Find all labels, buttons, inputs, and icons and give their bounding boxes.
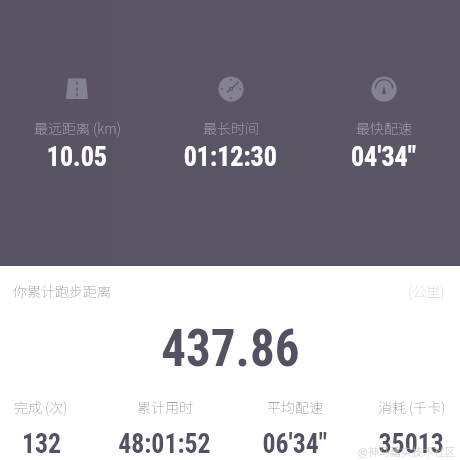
staticText: 06'34" (262, 428, 327, 460)
staticText: 完成 (次) (14, 397, 68, 417)
button[interactable]: Longest time (154, 0, 307, 172)
staticText: 132 (22, 428, 61, 460)
button[interactable]: Longest distance (0, 0, 154, 172)
button[interactable]: 消耗 (千卡) (377, 397, 446, 460)
staticText: 10.05 (47, 140, 107, 172)
staticText: 累计用时 (137, 397, 193, 417)
staticText: 最远距离 (km) (34, 118, 121, 138)
staticText: 最快配速 (356, 118, 412, 138)
staticText: 你累计跑步距离 (13, 281, 111, 301)
staticText: 平均配速 (267, 397, 323, 417)
staticText: (公里) (408, 281, 445, 301)
staticText: 04'34" (351, 140, 416, 172)
staticText: 消耗 (千卡) (378, 397, 446, 417)
staticText: 35013 (379, 428, 444, 460)
other: Longest distance (64, 76, 90, 102)
staticText: 最长时间 (203, 118, 259, 138)
staticText: 01:12:30 (184, 140, 277, 172)
staticText: 48:01:52 (118, 428, 211, 460)
staticText: @神马嘉实技术社区 (358, 443, 456, 459)
button[interactable]: 平均配速 (261, 397, 329, 460)
other: Fastest pace (371, 76, 397, 102)
button[interactable]: Fastest pace (307, 0, 460, 172)
button[interactable]: 累计用时 (116, 397, 213, 460)
button[interactable]: 完成 (次) (14, 397, 68, 460)
other: Longest time (218, 76, 244, 102)
staticText: 437.86 (161, 318, 300, 379)
